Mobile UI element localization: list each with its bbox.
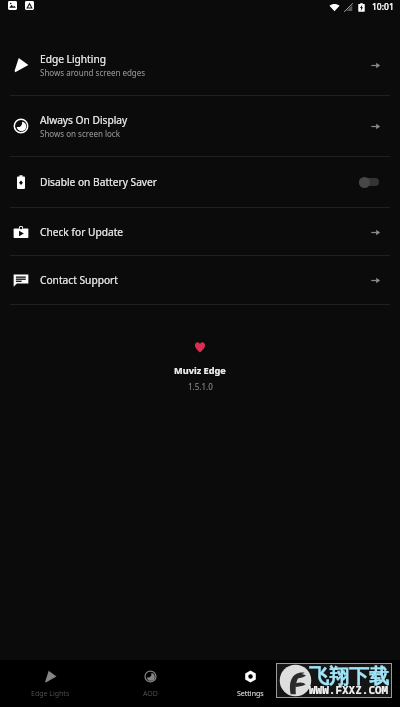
- button[interactable]: Open Contact Support: [363, 268, 387, 292]
- staticText: AOD: [143, 689, 158, 699]
- staticText: 飞翔下载: [309, 664, 389, 689]
- button[interactable]: Edge Lights: [0, 660, 100, 707]
- button[interactable]: Open Always On Display: [363, 114, 387, 138]
- staticText: Themes: [337, 689, 364, 699]
- staticText: WWW.FXXZ.COM: [309, 682, 389, 697]
- button[interactable]: AOD: [100, 660, 200, 707]
- button[interactable]: Themes: [300, 660, 400, 707]
- button[interactable]: Contact Support: [0, 256, 400, 304]
- staticText: Shows around screen edges: [40, 67, 146, 78]
- staticText: Disable on Battery Saver: [40, 175, 157, 189]
- staticText: Contact Support: [40, 273, 118, 287]
- button[interactable]: Always On Display: [0, 96, 400, 156]
- staticText: Edge Lighting: [40, 52, 106, 66]
- button[interactable]: Disable on Battery Saver: [0, 157, 400, 207]
- button[interactable]: Check for Update: [0, 208, 400, 255]
- staticText: Shows on screen lock: [40, 128, 120, 139]
- button[interactable]: Disable on Battery Saver toggle: [352, 172, 386, 192]
- button[interactable]: Settings: [200, 660, 300, 707]
- staticText: Edge Lights: [31, 689, 70, 699]
- button[interactable]: Edge Lighting: [0, 35, 400, 95]
- staticText: 10:01: [372, 1, 394, 13]
- staticText: Muviz Edge: [174, 364, 226, 377]
- button[interactable]: Open Check for Update: [363, 220, 387, 244]
- staticText: Settings: [237, 689, 264, 699]
- staticText: Check for Update: [40, 225, 124, 239]
- staticText: 1.5.1.0: [188, 381, 213, 392]
- button[interactable]: Open Edge Lighting: [363, 53, 387, 77]
- staticText: Always On Display: [40, 113, 128, 127]
